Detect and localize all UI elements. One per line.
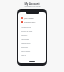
staticText: Notifications — [21, 26, 32, 28]
button[interactable]: About — [18, 53, 46, 57]
button[interactable]: Notifications — [18, 25, 46, 29]
button[interactable]: Privacy & data — [18, 29, 46, 33]
button[interactable]: Security — [18, 33, 46, 37]
staticText: About — [21, 54, 26, 56]
button[interactable]: Premium plan — [18, 20, 46, 24]
button[interactable]: Help centre — [18, 49, 46, 53]
staticText: Jane Cooper — [24, 17, 34, 19]
staticText: Help centre — [21, 50, 31, 52]
button[interactable]: Appearance — [18, 41, 46, 45]
staticText: Privacy & data — [21, 30, 33, 32]
button[interactable]: Language — [18, 37, 46, 41]
staticText: Language — [21, 38, 29, 40]
staticText: My Account — [24, 2, 40, 6]
staticText: Security — [21, 34, 28, 36]
staticText: Appearance — [21, 42, 31, 44]
button[interactable]: Payment — [18, 45, 46, 49]
staticText: Manage your profile — [24, 5, 41, 7]
staticText: Premium plan — [24, 21, 36, 23]
staticText: Payment — [21, 46, 29, 48]
button[interactable]: Jane Cooper — [18, 16, 46, 20]
